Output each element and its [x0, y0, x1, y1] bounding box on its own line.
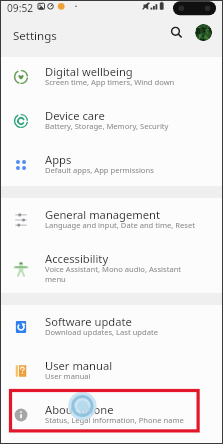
staticText: menu — [45, 274, 66, 284]
button[interactable]: Account — [195, 24, 212, 41]
staticText: Screen time, App timers, Wind down — [45, 77, 175, 87]
staticText: User manual — [45, 371, 91, 381]
staticText: Accessibility — [45, 251, 109, 266]
staticText: 09:52 — [7, 1, 34, 15]
staticText: Software update — [45, 314, 132, 329]
button[interactable]: General management — [0, 200, 223, 244]
button[interactable]: Digital wellbeing — [0, 57, 223, 101]
staticText: Download updates, Last update — [45, 327, 158, 337]
staticText: About phone — [45, 402, 114, 417]
button[interactable]: About phone — [0, 395, 223, 439]
staticText: User manual — [45, 358, 113, 373]
staticText: Default apps, App permissions — [45, 165, 154, 175]
button[interactable]: Accessibility — [0, 244, 223, 288]
button[interactable]: Device care — [0, 101, 223, 145]
staticText: Voice Assistant, Mono audio, Assistant — [45, 264, 182, 274]
staticText: Apps — [45, 152, 72, 167]
staticText: Status, Legal information, Phone name — [45, 415, 184, 425]
staticText: Digital wellbeing — [45, 64, 133, 79]
button[interactable]: Software update — [0, 307, 223, 351]
staticText: General management — [45, 207, 160, 222]
button[interactable]: Search — [166, 22, 185, 41]
staticText: Battery, Storage, Memory, Security — [45, 121, 169, 131]
staticText: Language and input, Date and time, Reset — [45, 220, 196, 230]
staticText: Settings — [13, 28, 57, 44]
button[interactable]: Apps — [0, 145, 223, 189]
staticText: Device care — [45, 108, 105, 123]
button[interactable]: User manual — [0, 351, 223, 395]
